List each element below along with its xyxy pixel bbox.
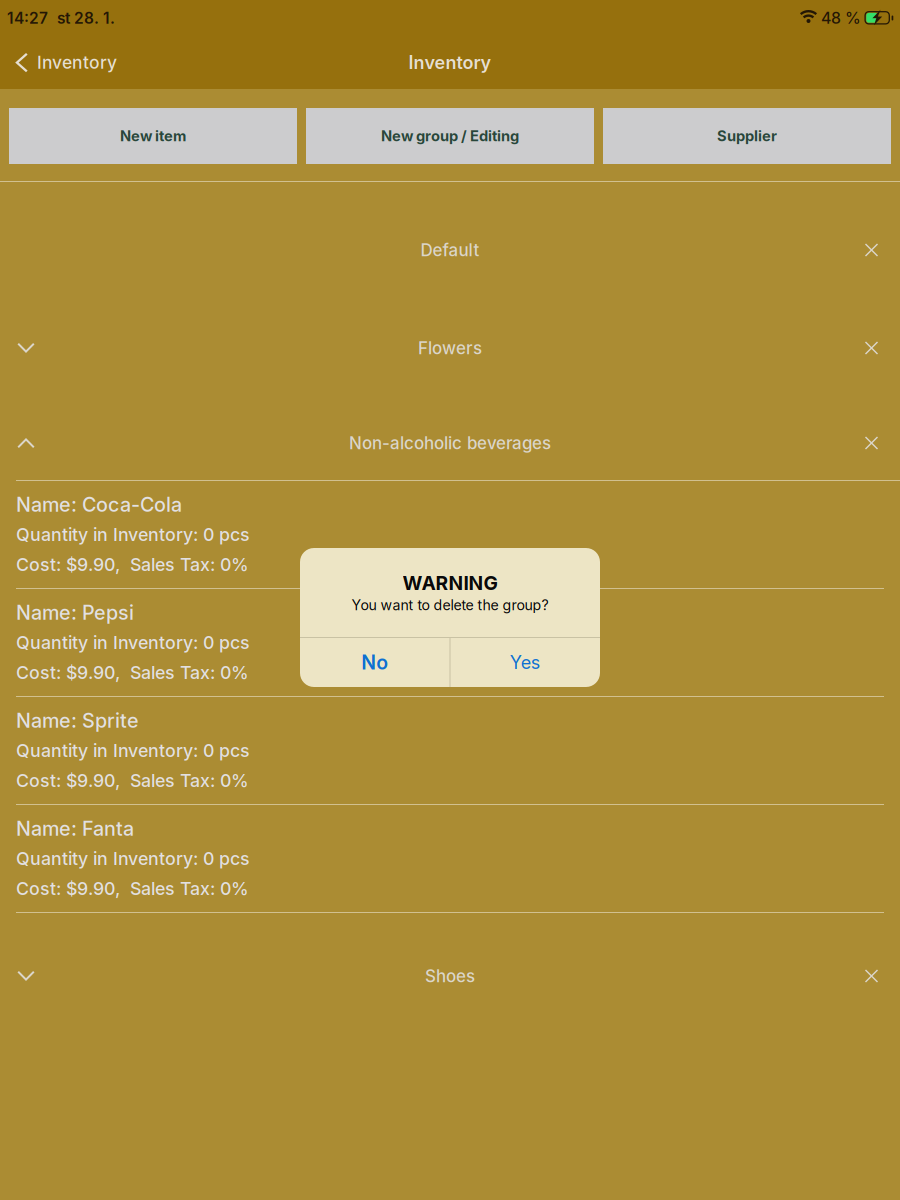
staticText: New item	[120, 127, 186, 145]
button[interactable]: Delete group	[849, 318, 900, 378]
staticText: Non-alcoholic beverages	[349, 433, 551, 453]
button[interactable]: Expand group	[0, 318, 52, 378]
button[interactable]: Expand group	[0, 946, 52, 1006]
button[interactable]: Supplier	[603, 108, 891, 164]
staticText: Quantity in Inventory: 0 pcs	[16, 632, 250, 653]
staticText: Cost: $9.90, Sales Tax: 0%	[16, 554, 249, 575]
staticText: Quantity in Inventory: 0 pcs	[16, 524, 250, 545]
staticText: 14:27	[7, 9, 48, 27]
button[interactable]: Yes	[450, 638, 600, 687]
staticText: Quantity in Inventory: 0 pcs	[16, 848, 250, 869]
button[interactable]: Non-alcoholic beverages	[349, 413, 551, 473]
staticText: Shoes	[425, 966, 475, 986]
button[interactable]: Name: Fanta	[0, 805, 900, 912]
button[interactable]: Name: Sprite	[0, 697, 900, 804]
staticText: Inventory	[408, 52, 491, 73]
button[interactable]: Name: Coca-Cola	[0, 481, 900, 588]
staticText: You want to delete the group?	[351, 597, 548, 614]
staticText: Cost: $9.90, Sales Tax: 0%	[16, 770, 249, 791]
staticText: Inventory	[37, 52, 117, 73]
button[interactable]: Delete group	[849, 220, 900, 280]
staticText: Name: Pepsi	[16, 601, 134, 624]
staticText: Supplier	[717, 127, 777, 145]
staticText: Cost: $9.90, Sales Tax: 0%	[16, 878, 249, 899]
staticText: 48 %	[821, 8, 861, 28]
button[interactable]: Flowers	[418, 318, 482, 378]
staticText: New group / Editing	[381, 127, 519, 145]
staticText: Flowers	[418, 338, 482, 358]
button[interactable]: Default	[420, 220, 479, 280]
button[interactable]: New group / Editing	[306, 108, 594, 164]
staticText: Name: Sprite	[16, 709, 139, 732]
button[interactable]: No	[300, 638, 449, 687]
staticText: WARNING	[402, 571, 497, 594]
button[interactable]: Name: Pepsi	[0, 589, 900, 696]
staticText: Default	[420, 240, 479, 260]
staticText: Cost: $9.90, Sales Tax: 0%	[16, 662, 249, 683]
button[interactable]: Collapse group	[0, 413, 52, 473]
button[interactable]: New item	[9, 108, 297, 164]
button[interactable]: Shoes	[425, 946, 475, 1006]
button[interactable]: Delete group	[849, 413, 900, 473]
staticText: Yes	[510, 652, 541, 673]
button[interactable]: Delete group	[849, 946, 900, 1006]
staticText: st 28. 1.	[57, 9, 115, 27]
staticText: No	[361, 651, 388, 674]
staticText: Name: Fanta	[16, 817, 134, 840]
staticText: Name: Coca-Cola	[16, 493, 182, 516]
button[interactable]: Inventory	[0, 36, 127, 89]
staticText: Quantity in Inventory: 0 pcs	[16, 740, 250, 761]
